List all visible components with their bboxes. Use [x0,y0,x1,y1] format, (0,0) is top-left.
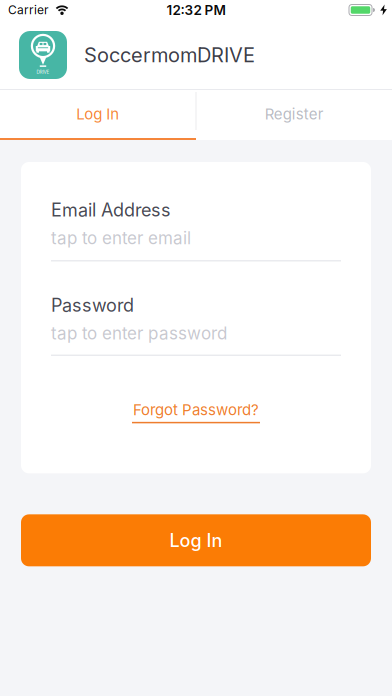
button[interactable]: Log In [0,90,195,138]
staticText: Log In [76,105,119,123]
staticText: Register [265,105,324,123]
staticText: Password [51,294,134,316]
staticText: tap to enter email [51,228,191,248]
staticText: 12:32 PM [166,2,225,18]
staticText: Log In [169,529,222,551]
staticText: SoccermomDRIVE [84,43,255,67]
staticText: Carrier [8,3,49,17]
staticText: Forgot Password? [133,401,259,419]
staticText: DRIVE [36,69,49,75]
staticText: tap to enter password [51,323,227,344]
staticText: Email Address [51,199,171,221]
button[interactable]: Register [196,90,392,138]
button[interactable]: Log In [21,514,371,566]
button[interactable]: Forgot Password? [132,401,260,423]
